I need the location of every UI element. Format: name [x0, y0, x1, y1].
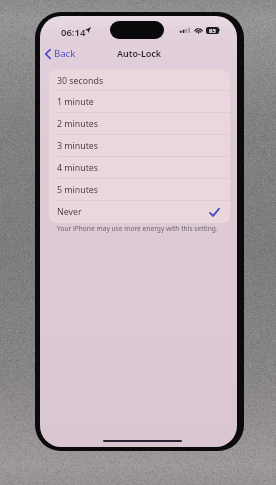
staticText: 30 seconds	[57, 75, 104, 87]
staticText: 4 minutes	[57, 162, 99, 174]
button[interactable]: 3 minutes	[49, 135, 230, 157]
button[interactable]: 5 minutes	[49, 179, 230, 201]
staticText: 85	[209, 27, 216, 34]
staticText: 2 minutes	[57, 118, 99, 130]
button[interactable]: 4 minutes	[49, 157, 230, 179]
staticText: Back	[54, 47, 76, 60]
staticText: 3 minutes	[57, 140, 99, 152]
button[interactable]: 1 minute	[49, 91, 230, 113]
button[interactable]: 2 minutes	[49, 113, 230, 135]
staticText: 1 minute	[57, 96, 94, 108]
staticText: 06:14	[61, 26, 86, 39]
staticText: Auto-Lock	[117, 47, 162, 59]
staticText: Never	[57, 206, 82, 218]
button[interactable]: 30 seconds	[49, 70, 230, 91]
staticText: Your iPhone may use more energy with thi…	[57, 224, 218, 233]
button[interactable]: Back	[43, 44, 78, 63]
button[interactable]: Never	[49, 201, 230, 223]
staticText: 5 minutes	[57, 184, 99, 196]
